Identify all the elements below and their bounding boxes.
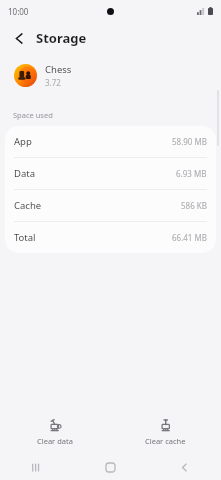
button[interactable]: Data — [5, 158, 216, 189]
button[interactable]: Chess — [0, 54, 221, 96]
button[interactable]: App — [5, 126, 216, 157]
staticText: 66.41 MB — [172, 232, 207, 243]
staticText: Space used — [13, 110, 53, 120]
staticText: Storage — [36, 29, 87, 47]
staticText: Total — [14, 231, 36, 244]
button[interactable]: Back — [147, 454, 221, 480]
button[interactable]: Back — [8, 27, 30, 49]
staticText: Cache — [14, 199, 42, 212]
staticText: 3.72 — [45, 77, 61, 88]
staticText: Chess — [45, 63, 72, 76]
staticText: 6.93 MB — [176, 168, 207, 179]
staticText: 586 KB — [181, 200, 207, 211]
staticText: Data — [14, 167, 36, 180]
staticText: Clear data — [37, 436, 73, 446]
button[interactable]: Clear data — [0, 414, 110, 450]
button[interactable]: Total — [5, 222, 216, 253]
button[interactable]: Recent apps — [0, 454, 73, 480]
button[interactable]: Clear cache — [110, 414, 221, 450]
button[interactable]: Cache — [5, 190, 216, 221]
staticText: 10:00 — [8, 6, 29, 17]
staticText: Clear cache — [145, 436, 186, 446]
staticText: 58.90 MB — [172, 136, 207, 147]
button[interactable]: Home — [73, 454, 147, 480]
staticText: App — [14, 135, 32, 148]
